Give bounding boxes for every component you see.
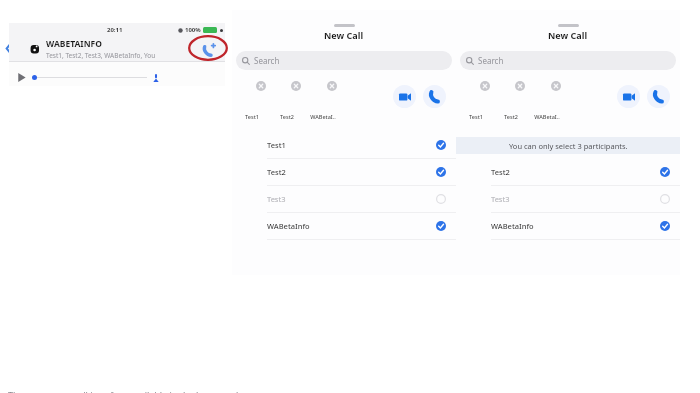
button[interactable]: Test1 [267,132,456,158]
button[interactable]: Remove Test1 [256,81,266,91]
staticText: New Call [324,29,364,41]
button[interactable]: Start voice call [423,85,446,108]
staticText: 20:11 [107,26,123,34]
staticText: Search [254,55,280,66]
staticText: 100% [185,26,201,34]
button[interactable]: WABETAINFO [9,36,225,61]
staticText: The new group call interface available i… [8,389,255,393]
button[interactable]: Test3 [267,186,456,212]
staticText: Test1, Test2, Test3, WABetaInfo, You [46,51,156,60]
button[interactable]: Search [460,51,676,70]
button[interactable]: Start video call [617,85,640,108]
button[interactable]: WABetaInfo [267,213,456,239]
staticText: Test1 [463,113,489,120]
staticText: Test2 [274,113,300,120]
staticText: You can only select 3 participants. [509,141,628,151]
staticText: Test2 [498,113,524,120]
staticText: WABetaInfo [491,221,660,231]
button[interactable]: Start voice call [647,85,670,108]
staticText: Test1 [239,113,265,120]
button[interactable]: Back [5,41,14,56]
button[interactable]: Search [236,51,452,70]
staticText: Test1 [267,140,436,150]
button[interactable]: New group call [198,38,220,60]
button[interactable]: Test3 [491,186,680,212]
staticText: WABETAINFO [46,38,102,50]
button[interactable]: Test2 [491,159,680,185]
button[interactable]: Remove Test1 [480,81,490,91]
button[interactable]: Play voice message [15,71,28,84]
staticText: WABetaI... [534,113,560,120]
staticText: Test2 [491,167,660,177]
button[interactable]: WABetaInfo [491,213,680,239]
button[interactable]: Start video call [393,85,416,108]
staticText: WABetaI... [310,113,336,120]
staticText: Search [478,55,504,66]
staticText: WABetaInfo [267,221,436,231]
staticText: Test2 [267,167,436,177]
button[interactable]: Remove Test2 [515,81,525,91]
button[interactable]: Remove WABetaI... [551,81,561,91]
button[interactable]: Remove Test2 [291,81,301,91]
staticText: New Call [548,29,588,41]
staticText: Test3 [267,194,436,204]
button[interactable]: Remove WABetaI... [327,81,337,91]
button[interactable]: Test2 [267,159,456,185]
staticText: Test3 [491,194,660,204]
